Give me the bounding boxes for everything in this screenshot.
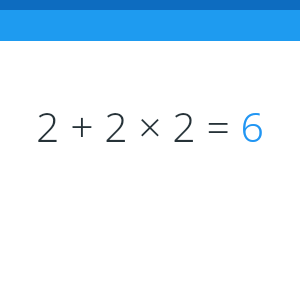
staticText: 2 + 2 × 2 = 6 bbox=[36, 98, 264, 154]
button[interactable]: 2 + 2 × 2 = 6 bbox=[0, 98, 300, 154]
